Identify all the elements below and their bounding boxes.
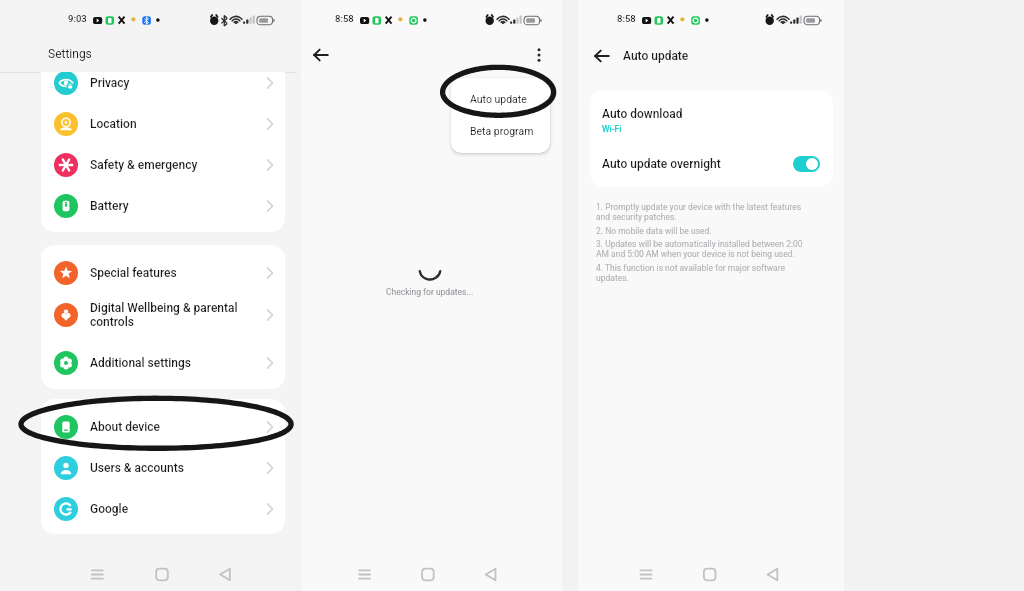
staticText: Users & accounts (90, 461, 184, 475)
staticText: 2. No mobile data will be used. (596, 226, 712, 236)
button[interactable]: Beta program (451, 118, 550, 153)
staticText: 3. Updates will be automatically install… (596, 239, 816, 260)
button[interactable]: Auto download (590, 90, 833, 144)
staticText: Auto update (623, 49, 689, 63)
button[interactable]: Auto update overnight (590, 146, 833, 182)
staticText: Settings (48, 47, 92, 61)
button[interactable]: Home (149, 558, 175, 591)
staticText: About device (90, 420, 160, 434)
button[interactable]: Privacy (41, 72, 285, 103)
staticText: 8:58 (335, 13, 354, 24)
staticText: 8:58 (617, 13, 636, 24)
button[interactable]: Safety & emergency (41, 144, 285, 185)
staticText: 9:03 (68, 13, 87, 24)
staticText: Battery (90, 199, 129, 213)
button[interactable]: Auto update (451, 78, 550, 118)
button[interactable]: About device (41, 406, 285, 447)
button[interactable]: Auto update (591, 44, 689, 68)
button[interactable]: Home (415, 558, 441, 591)
staticText: Additional settings (90, 356, 191, 370)
button[interactable]: More options (526, 42, 552, 68)
button[interactable]: Recent apps (633, 558, 659, 591)
button[interactable]: Users & accounts (41, 447, 285, 488)
staticText: 1. Promptly update your device with the … (596, 202, 816, 223)
staticText: 4. This function is not available for ma… (596, 263, 816, 284)
button[interactable]: Battery (41, 185, 285, 226)
staticText: Special features (90, 266, 177, 280)
staticText: Beta program (470, 125, 534, 137)
staticText: Auto update overnight (602, 157, 721, 171)
button[interactable]: Home (697, 558, 723, 591)
staticText: Wi-Fi (602, 124, 622, 134)
staticText: Auto download (602, 107, 683, 121)
button[interactable]: Location (41, 103, 285, 144)
staticText: Safety & emergency (90, 158, 198, 172)
staticText: Location (90, 117, 137, 131)
staticText: Digital Wellbeing & parental controls (90, 301, 238, 329)
button[interactable]: Digital Wellbeing & parental controls (41, 294, 285, 335)
button[interactable]: Special features (41, 252, 285, 293)
button[interactable]: Back (213, 558, 239, 591)
button[interactable]: Back (478, 558, 504, 591)
button[interactable]: Back (760, 558, 786, 591)
staticText: Auto update (470, 93, 527, 105)
button[interactable]: Google (41, 488, 285, 529)
staticText: Checking for updates... (386, 287, 474, 297)
button[interactable]: Additional settings (41, 342, 285, 383)
staticText: Privacy (90, 76, 130, 90)
staticText: Google (90, 502, 129, 516)
button[interactable]: Recent apps (352, 558, 378, 591)
button[interactable]: Back (308, 42, 334, 68)
button[interactable]: Recent apps (84, 558, 110, 591)
